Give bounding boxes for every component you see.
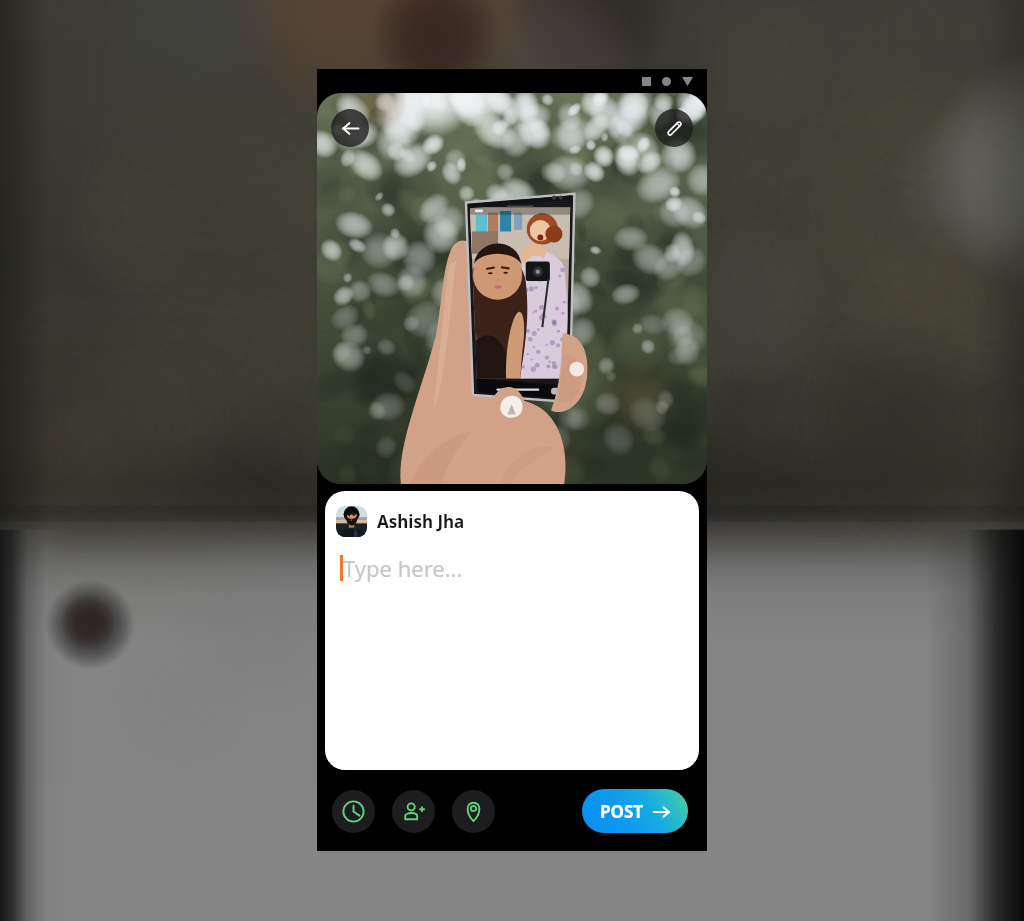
button[interactable]: Type here... xyxy=(340,553,683,733)
staticText: Ashish Jha xyxy=(377,510,465,533)
button[interactable]: Location xyxy=(452,790,495,833)
button[interactable]: Tag people xyxy=(392,790,435,833)
button[interactable]: Edit xyxy=(655,109,693,147)
staticText: POST xyxy=(600,800,644,823)
button[interactable]: Ashish Jha xyxy=(336,506,465,537)
button[interactable]: POST xyxy=(582,789,688,833)
button[interactable]: Schedule xyxy=(332,790,375,833)
staticText: Type here... xyxy=(343,553,463,583)
button[interactable]: Back xyxy=(331,109,369,147)
